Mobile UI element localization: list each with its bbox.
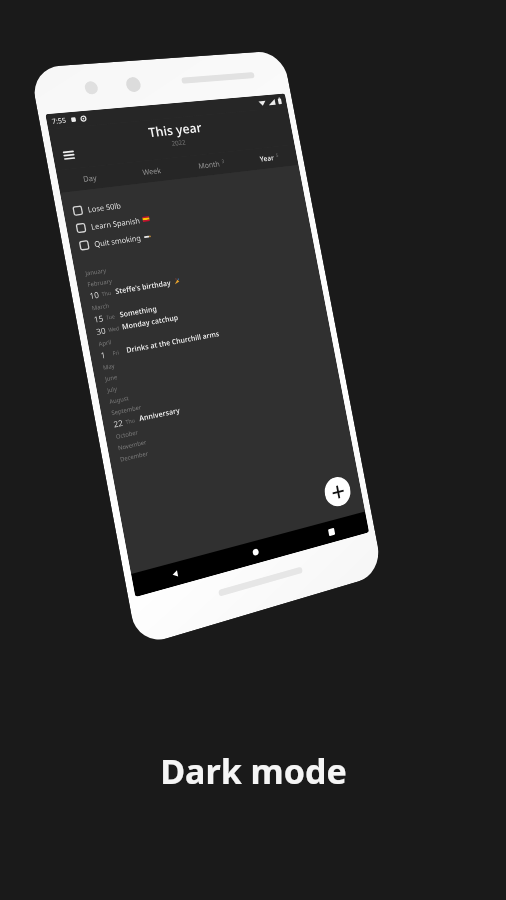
staticText: Steffe's birthday <box>114 277 172 296</box>
staticText: 10 <box>88 288 101 301</box>
staticText: Drinks at the Churchill arms <box>125 328 220 355</box>
button[interactable]: Week <box>119 157 184 185</box>
staticText: May <box>102 362 116 372</box>
button[interactable]: 30 <box>85 286 324 339</box>
staticText: 30 <box>95 324 107 337</box>
staticText: September <box>111 403 143 417</box>
staticText: 7:55 <box>51 116 67 127</box>
staticText: Quit smoking <box>93 232 142 249</box>
staticText: Monday catchup <box>121 312 179 332</box>
button[interactable]: Back <box>131 552 218 597</box>
staticText: 1 <box>100 348 107 361</box>
staticText: Something <box>119 303 158 319</box>
button[interactable]: Recent apps <box>292 511 369 552</box>
staticText: Year <box>259 153 275 164</box>
staticText: Lose 50lb <box>87 200 122 214</box>
button[interactable]: Home <box>214 531 296 574</box>
staticText: 2022 <box>171 138 186 148</box>
button[interactable]: 10 <box>78 254 318 303</box>
staticText: Fri <box>112 348 120 356</box>
staticText: December <box>119 449 149 464</box>
staticText: July <box>106 384 118 395</box>
button[interactable]: Menu <box>58 146 79 166</box>
staticText: Day <box>82 172 98 184</box>
staticText: November <box>117 438 147 452</box>
button[interactable]: Lose 50lb <box>62 174 303 221</box>
staticText: 3 <box>221 158 225 165</box>
staticText: Tue <box>105 312 115 321</box>
staticText: Thu <box>101 288 112 297</box>
staticText: Anniversary <box>138 404 181 423</box>
staticText: April <box>98 338 112 348</box>
staticText: 22 <box>112 416 124 430</box>
button[interactable]: Year <box>239 144 298 171</box>
staticText: August <box>109 394 130 406</box>
staticText: January <box>85 266 107 278</box>
button[interactable]: Quit smoking <box>68 206 309 255</box>
staticText: February <box>87 277 113 289</box>
staticText: Dark mode <box>160 748 347 794</box>
staticText: June <box>104 373 119 383</box>
button[interactable]: 22 <box>102 371 340 432</box>
staticText: October <box>115 428 139 441</box>
staticText: March <box>91 301 111 312</box>
button[interactable]: 1 <box>89 308 328 362</box>
button[interactable]: Learn Spanish <box>65 190 306 238</box>
staticText: 15 <box>93 312 105 325</box>
button[interactable]: Month <box>180 151 243 178</box>
staticText: Week <box>142 165 162 177</box>
button[interactable]: 15 <box>83 275 322 326</box>
staticText: 5 <box>275 152 279 159</box>
button[interactable]: Day <box>56 164 123 193</box>
staticText: Month <box>197 159 221 171</box>
staticText: Learn Spanish <box>90 215 141 232</box>
staticText: This year <box>147 118 204 141</box>
button[interactable]: Add event <box>322 474 353 509</box>
staticText: Thu <box>125 416 136 425</box>
staticText: Wed <box>107 324 120 333</box>
